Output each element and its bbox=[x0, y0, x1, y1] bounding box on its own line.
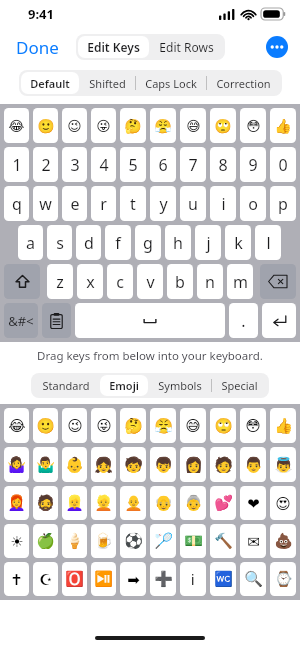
button[interactable]: r bbox=[91, 186, 116, 221]
button[interactable]: ✉️ bbox=[240, 524, 266, 558]
button[interactable]: y bbox=[150, 186, 176, 221]
button[interactable]: 😜 bbox=[91, 108, 116, 143]
button[interactable]: 👶 bbox=[62, 447, 87, 482]
button[interactable]: e bbox=[62, 186, 87, 221]
button[interactable]: &#< bbox=[4, 303, 38, 338]
button[interactable]: 6 bbox=[150, 147, 176, 182]
button[interactable]: g bbox=[135, 225, 161, 260]
button[interactable]: 🍏 bbox=[33, 524, 58, 558]
button[interactable]: 👧 bbox=[91, 447, 116, 482]
button[interactable]: 👨 bbox=[240, 447, 266, 482]
button[interactable]: 👴 bbox=[150, 486, 176, 520]
button[interactable]: Symbols bbox=[149, 375, 211, 396]
button[interactable]: Caps Lock bbox=[136, 72, 206, 94]
button[interactable]: l bbox=[255, 225, 281, 260]
button[interactable]: ❤️ bbox=[240, 486, 266, 520]
button[interactable]: 🙂 bbox=[33, 108, 58, 143]
button[interactable]: Done bbox=[0, 32, 75, 63]
button[interactable]: ➕ bbox=[150, 562, 176, 596]
button[interactable]: 7 bbox=[180, 147, 206, 182]
button[interactable]: b bbox=[167, 264, 193, 299]
button[interactable]: 😳 bbox=[240, 408, 266, 443]
button[interactable]: 😤 bbox=[150, 108, 176, 143]
button[interactable]: 👩 bbox=[180, 447, 206, 482]
button[interactable]: k bbox=[225, 225, 251, 260]
button[interactable]: u bbox=[180, 186, 206, 221]
button[interactable]: 😅 bbox=[180, 108, 206, 143]
button[interactable]: a bbox=[18, 225, 43, 260]
button[interactable]: Emoji bbox=[100, 375, 148, 396]
button[interactable]: m bbox=[227, 264, 253, 299]
button[interactable]: s bbox=[47, 225, 72, 260]
button[interactable]: 😤 bbox=[150, 408, 176, 443]
button[interactable]: ℹ️ bbox=[180, 562, 206, 596]
button[interactable]: o bbox=[240, 186, 266, 221]
button[interactable]: 🙂 bbox=[33, 408, 58, 443]
button[interactable]: 🍺 bbox=[91, 524, 116, 558]
button[interactable]: ➡️ bbox=[120, 562, 146, 596]
button[interactable]: ☀️ bbox=[4, 524, 29, 558]
button[interactable]: More options bbox=[266, 36, 288, 58]
button[interactable]: 🧔 bbox=[33, 486, 58, 520]
button[interactable]: x bbox=[77, 264, 103, 299]
button[interactable]: h bbox=[165, 225, 191, 260]
button[interactable]: i bbox=[210, 186, 236, 221]
button[interactable]: Correction bbox=[207, 72, 280, 94]
button[interactable]: Edit Rows bbox=[150, 36, 223, 58]
button[interactable] bbox=[42, 303, 71, 338]
button[interactable]: 1 bbox=[4, 147, 29, 182]
button[interactable]: Edit Keys bbox=[78, 36, 149, 58]
button[interactable]: 🤔 bbox=[120, 108, 146, 143]
button[interactable]: 😉 bbox=[62, 108, 87, 143]
button[interactable]: ✝️ bbox=[4, 562, 29, 596]
button[interactable]: Standard bbox=[33, 375, 99, 396]
button[interactable]: 🏸 bbox=[150, 524, 176, 558]
button[interactable]: Shifted bbox=[80, 72, 135, 94]
button[interactable]: 🙄 bbox=[210, 408, 236, 443]
button[interactable]: j bbox=[195, 225, 221, 260]
button[interactable]: 😍 bbox=[270, 486, 296, 520]
button[interactable]: 2 bbox=[33, 147, 58, 182]
button[interactable] bbox=[75, 303, 225, 338]
button[interactable]: 😂 bbox=[4, 108, 29, 143]
button[interactable]: 4 bbox=[91, 147, 116, 182]
button[interactable]: 👱‍♀️ bbox=[62, 486, 87, 520]
button[interactable]: 💕 bbox=[210, 486, 236, 520]
button[interactable]: z bbox=[47, 264, 73, 299]
button[interactable]: q bbox=[4, 186, 29, 221]
button[interactable]: w bbox=[33, 186, 58, 221]
button[interactable] bbox=[260, 264, 296, 299]
button[interactable]: v bbox=[137, 264, 163, 299]
button[interactable]: 🍦 bbox=[62, 524, 87, 558]
button[interactable]: 🔍 bbox=[240, 562, 266, 596]
button[interactable]: 🧒 bbox=[120, 447, 146, 482]
button[interactable]: Special bbox=[212, 375, 267, 396]
button[interactable]: 👼 bbox=[270, 447, 296, 482]
button[interactable]: 5 bbox=[120, 147, 146, 182]
button[interactable]: 🔨 bbox=[210, 524, 236, 558]
button[interactable]: 9 bbox=[240, 147, 266, 182]
button[interactable]: 🅾️ bbox=[62, 562, 87, 596]
button[interactable]: 🤷‍♀️ bbox=[4, 447, 29, 482]
button[interactable]: 🧑‍🦲 bbox=[120, 486, 146, 520]
button[interactable]: 💵 bbox=[180, 524, 206, 558]
button[interactable]: 🧑 bbox=[210, 447, 236, 482]
button[interactable]: . bbox=[229, 303, 258, 338]
button[interactable]: Default bbox=[21, 72, 79, 94]
button[interactable] bbox=[262, 303, 296, 338]
button[interactable]: 🙄 bbox=[210, 108, 236, 143]
button[interactable]: 😉 bbox=[62, 408, 87, 443]
button[interactable]: 😂 bbox=[4, 408, 29, 443]
button[interactable]: n bbox=[197, 264, 223, 299]
button[interactable]: 👱 bbox=[91, 486, 116, 520]
button[interactable]: 0 bbox=[270, 147, 296, 182]
button[interactable]: ⌚ bbox=[270, 562, 296, 596]
button[interactable]: c bbox=[107, 264, 133, 299]
button[interactable]: ⚽ bbox=[120, 524, 146, 558]
button[interactable]: 👩‍🦰 bbox=[4, 486, 29, 520]
button[interactable]: d bbox=[76, 225, 101, 260]
button[interactable]: 8 bbox=[210, 147, 236, 182]
button[interactable]: 👦 bbox=[150, 447, 176, 482]
button[interactable]: 😅 bbox=[180, 408, 206, 443]
button[interactable]: f bbox=[105, 225, 131, 260]
